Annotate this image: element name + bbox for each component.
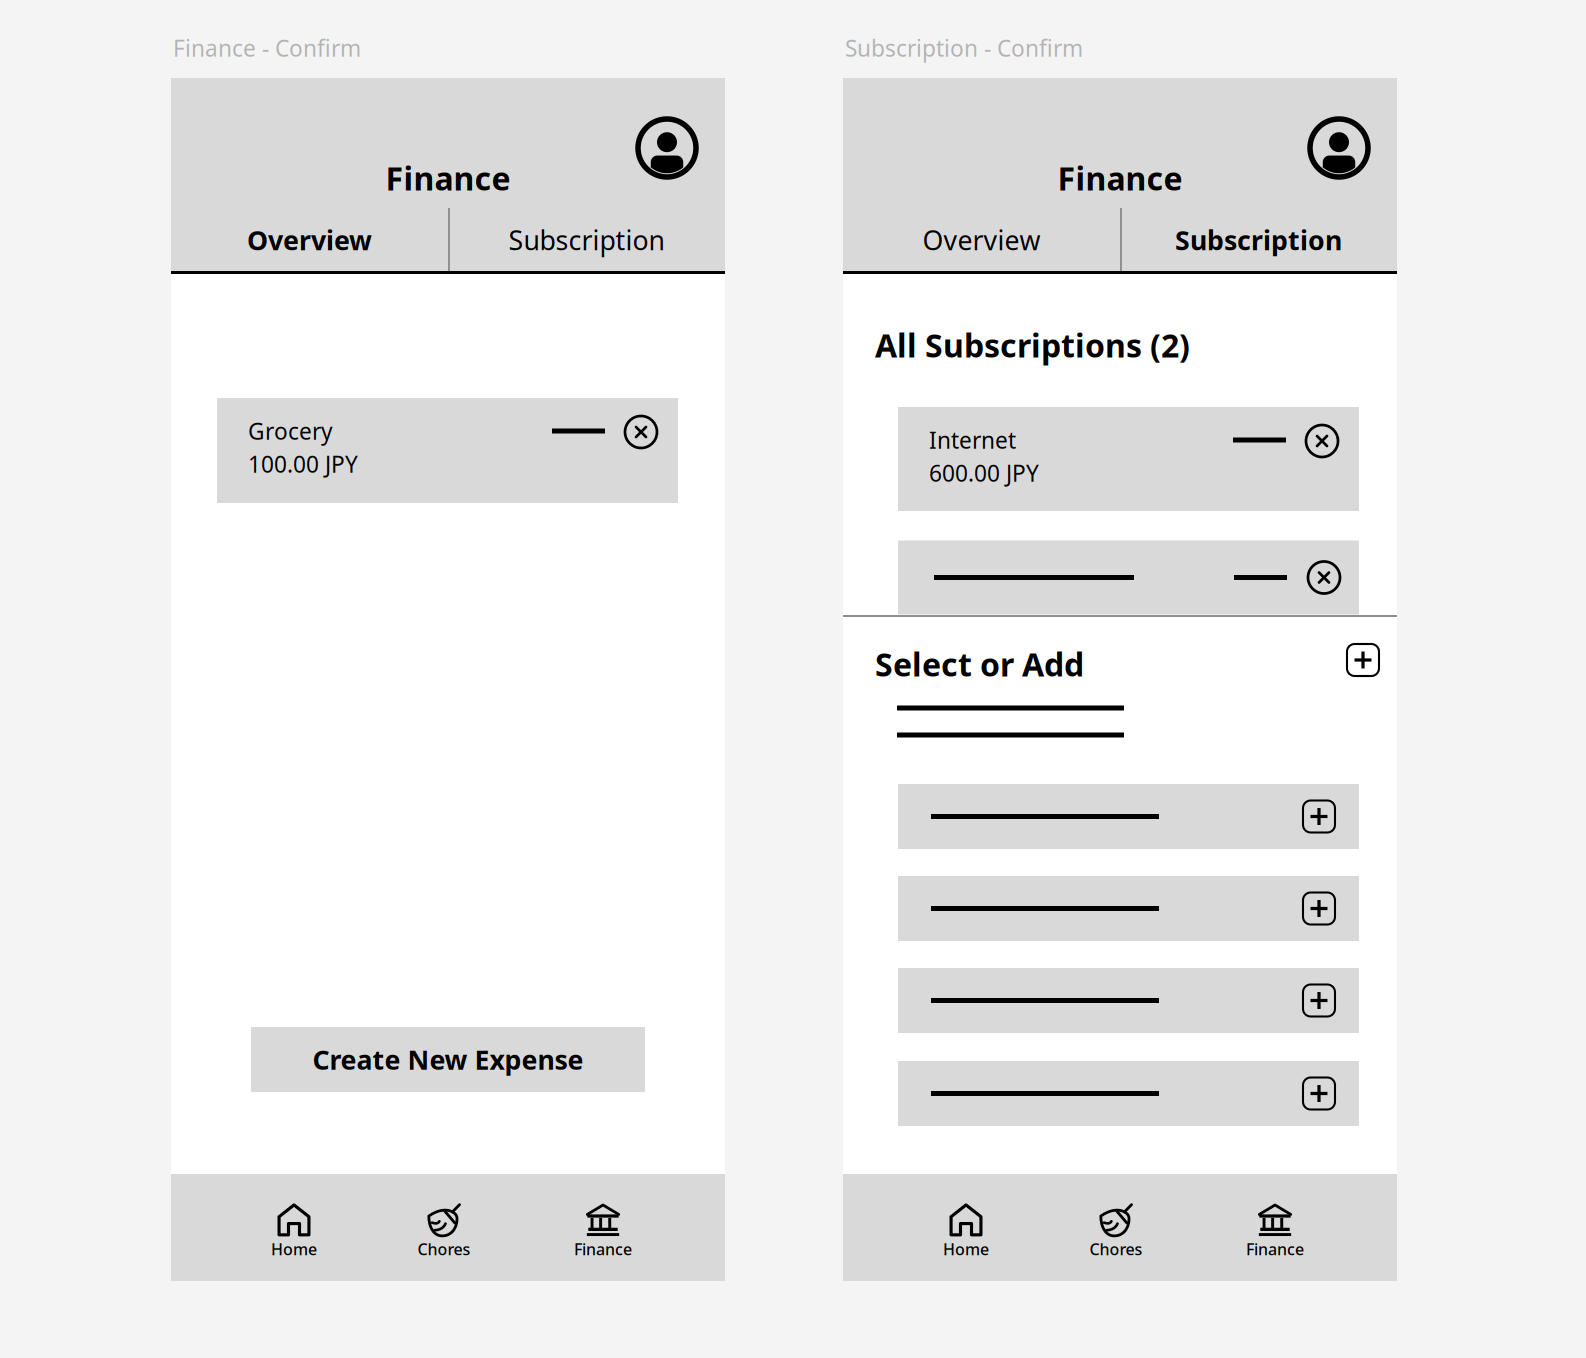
staticText: Grocery: [248, 416, 333, 446]
button[interactable]: Add subscription option 3: [898, 968, 1359, 1033]
button[interactable]: Create New Expense: [251, 1027, 645, 1092]
button[interactable]: Account: [630, 111, 704, 185]
staticText: Subscription: [1175, 222, 1342, 258]
button[interactable]: Add subscription option 2: [898, 876, 1359, 941]
staticText: 100.00 JPY: [248, 449, 358, 479]
staticText: Overview: [922, 222, 1040, 258]
staticText: Chores: [1089, 1238, 1142, 1260]
button[interactable]: Subscription: [448, 209, 725, 271]
staticText: Finance: [385, 157, 510, 199]
button[interactable]: Add subscription: [1340, 637, 1386, 683]
staticText: Chores: [417, 1238, 470, 1260]
button[interactable]: Subscription: [898, 540, 1359, 614]
staticText: Home: [943, 1238, 989, 1260]
button[interactable]: Chores: [369, 1178, 519, 1285]
staticText: 600.00 JPY: [929, 458, 1039, 488]
button[interactable]: Finance: [1200, 1178, 1350, 1285]
staticText: Finance: [1057, 157, 1182, 199]
button[interactable]: Add subscription option 4: [898, 1061, 1359, 1126]
button[interactable]: Add subscription option 1: [898, 784, 1359, 849]
staticText: Finance - Confirm: [173, 33, 361, 63]
staticText: Finance: [574, 1238, 632, 1260]
button[interactable]: Finance: [528, 1178, 678, 1285]
staticText: Subscription - Confirm: [845, 33, 1083, 63]
staticText: Finance: [1246, 1238, 1304, 1260]
button[interactable]: Home: [891, 1178, 1041, 1285]
staticText: Internet: [929, 425, 1016, 455]
button[interactable]: Subscription: [1120, 209, 1397, 271]
staticText: Subscription: [508, 222, 664, 258]
button[interactable]: Overview: [843, 209, 1120, 271]
button[interactable]: Overview: [171, 209, 448, 271]
staticText: Create New Expense: [312, 1042, 583, 1077]
staticText: All Subscriptions (2): [875, 324, 1190, 366]
button[interactable]: Account: [1302, 111, 1376, 185]
button[interactable]: Chores: [1041, 1178, 1191, 1285]
staticText: Overview: [247, 222, 372, 258]
button[interactable]: Internet: [898, 407, 1359, 511]
staticText: Home: [271, 1238, 317, 1260]
button[interactable]: Grocery: [217, 398, 678, 503]
staticText: Select or Add: [875, 643, 1084, 685]
button[interactable]: Home: [219, 1178, 369, 1285]
